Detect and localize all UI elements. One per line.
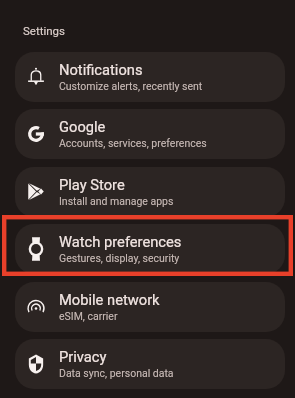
staticText: Privacy — [59, 348, 107, 365]
staticText: Notifications — [59, 61, 143, 78]
staticText: Google — [59, 118, 106, 135]
staticText: Install and manage apps — [59, 195, 174, 207]
button[interactable]: Google — [15, 109, 285, 159]
staticText: Data sync, personal data — [59, 367, 174, 379]
staticText: Watch preferences — [59, 233, 182, 250]
button[interactable]: Privacy — [15, 339, 285, 389]
button[interactable]: Play Store — [15, 167, 285, 217]
staticText: Settings — [23, 24, 65, 37]
staticText: eSIM, carrier — [59, 310, 118, 322]
button[interactable]: Notifications — [15, 52, 285, 102]
button[interactable]: Mobile network — [15, 282, 285, 332]
staticText: Accounts, services, preferences — [59, 137, 207, 149]
staticText: Gestures, display, security — [59, 252, 180, 264]
staticText: Customize alerts, recently sent — [59, 80, 203, 92]
staticText: Mobile network — [59, 291, 160, 308]
staticText: Play Store — [59, 176, 125, 193]
button[interactable]: Watch preferences — [15, 224, 285, 274]
